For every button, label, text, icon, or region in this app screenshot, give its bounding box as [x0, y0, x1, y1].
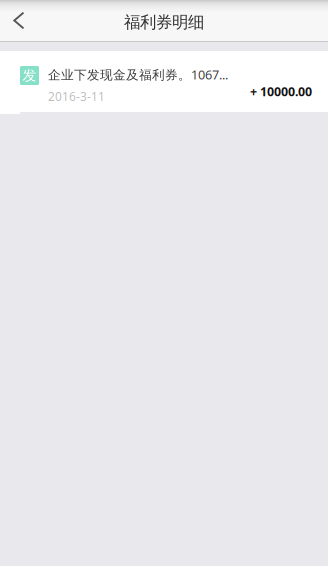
staticText: + 10000.00 [250, 83, 312, 100]
staticText: 企业下发现金及福利券。1067... [48, 66, 228, 83]
staticText: 福利券明细 [124, 12, 204, 33]
staticText: 发 [22, 67, 36, 84]
button[interactable]: Back [0, 0, 38, 41]
button[interactable]: 发 [0, 51, 328, 114]
staticText: 2016-3-11 [48, 88, 105, 104]
